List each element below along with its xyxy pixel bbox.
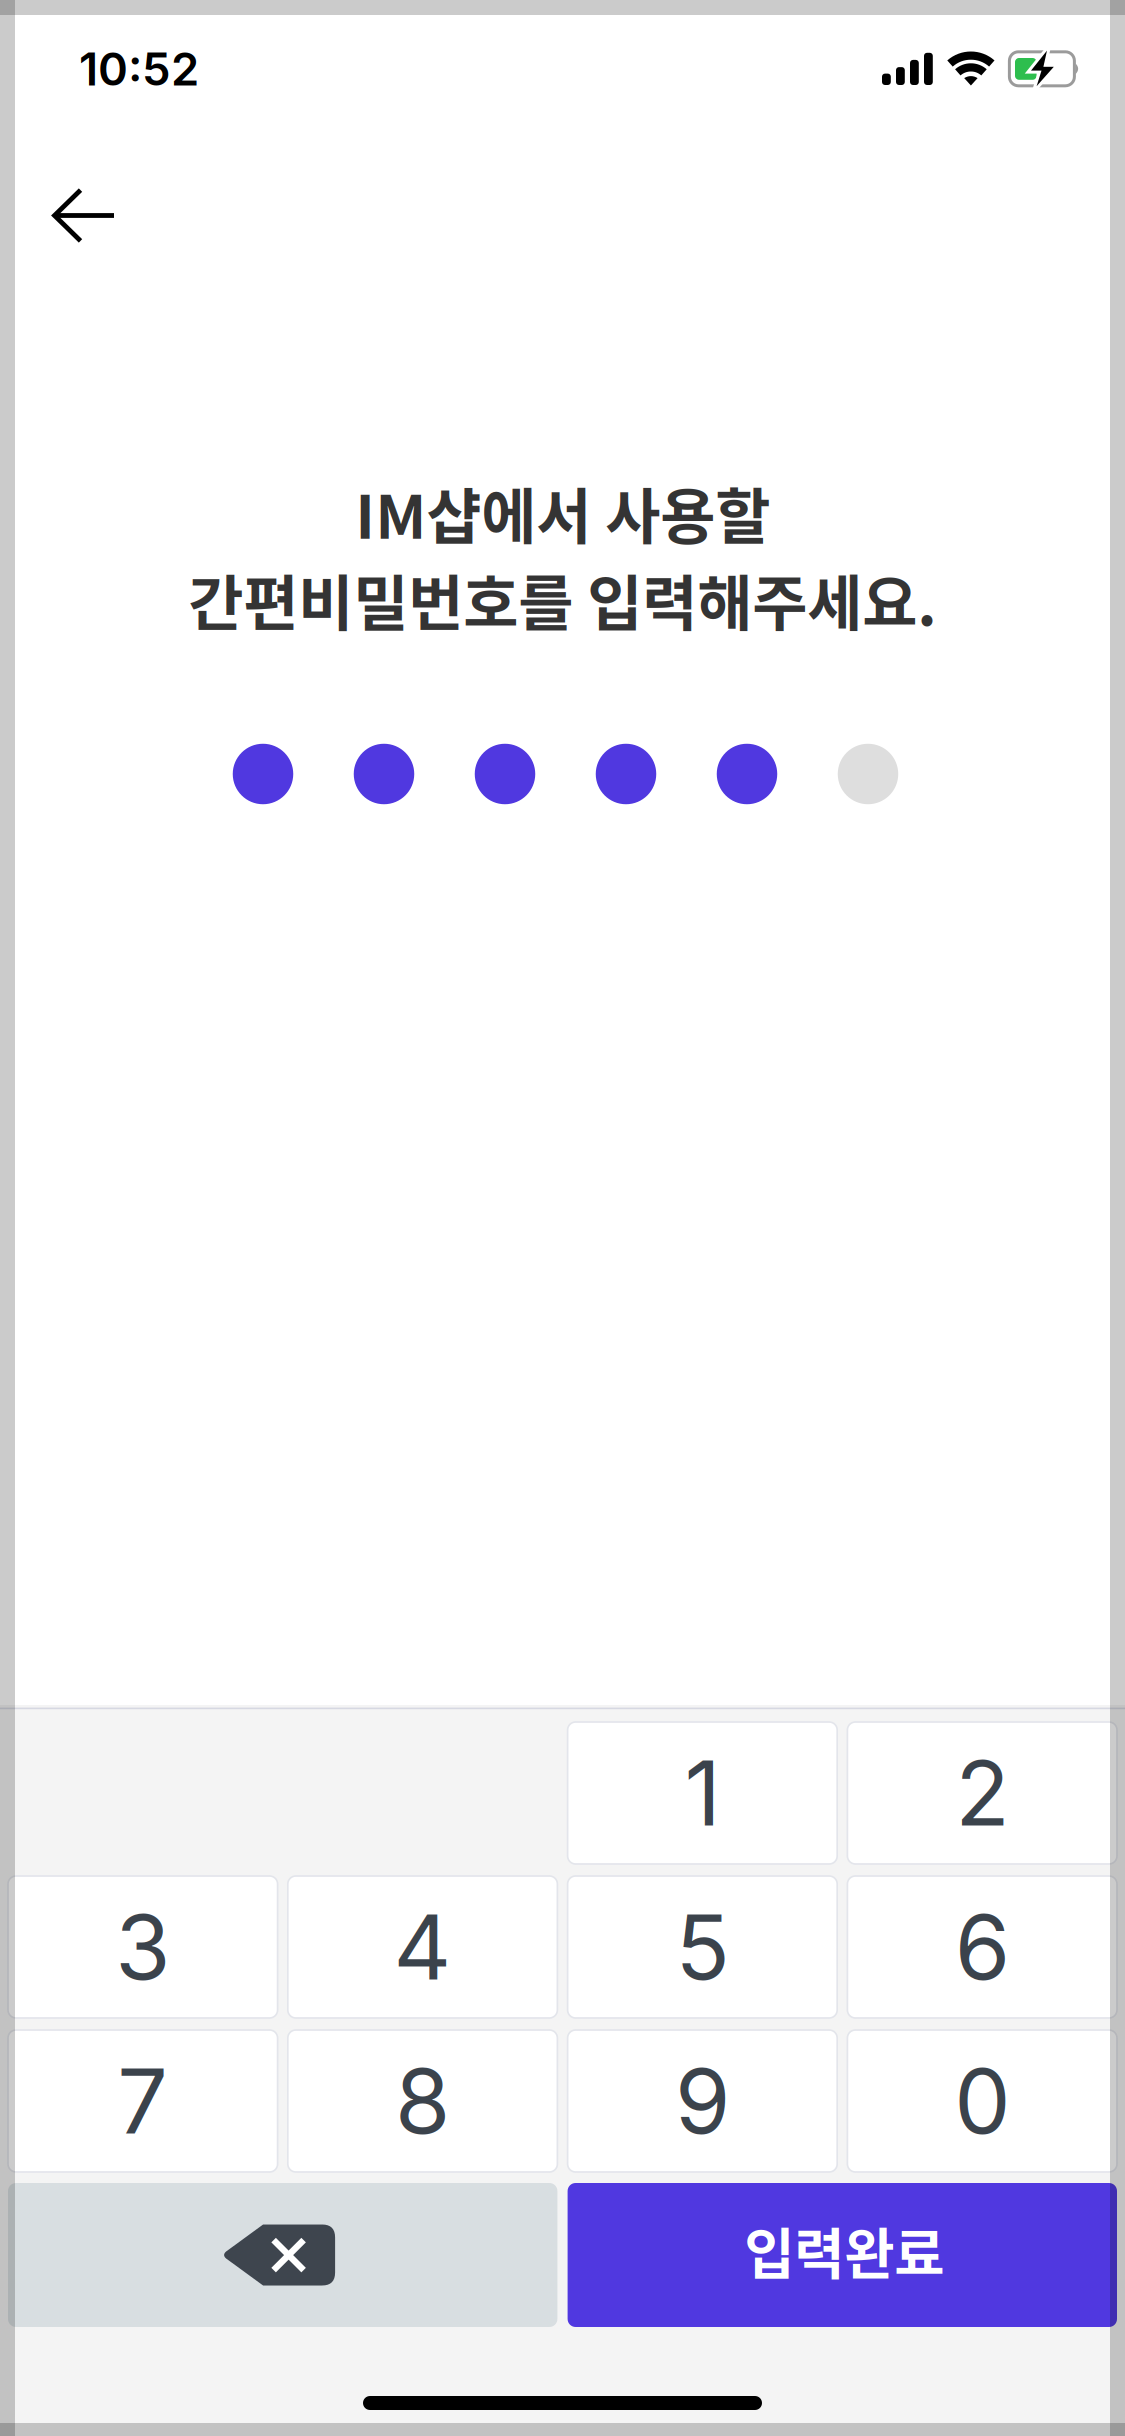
staticText: 2 xyxy=(955,1739,1009,1847)
button[interactable]: 6 xyxy=(847,1876,1117,2018)
staticText: 3 xyxy=(115,1893,170,2001)
staticText: 입력완료 xyxy=(744,2210,944,2290)
staticText: 6 xyxy=(955,1893,1010,2001)
button[interactable]: 3 xyxy=(8,1876,278,2018)
staticText: 10:52 xyxy=(79,42,199,96)
button[interactable]: 9 xyxy=(568,2030,837,2172)
button[interactable]: Back xyxy=(14,151,154,281)
staticText: 5 xyxy=(675,1893,729,2001)
staticText: 1 xyxy=(684,1739,720,1847)
staticText: 4 xyxy=(394,1893,452,2001)
staticText: 0 xyxy=(954,2047,1010,2155)
button[interactable]: 1 xyxy=(568,1722,837,1864)
staticText: 9 xyxy=(675,2047,730,2155)
button[interactable]: Delete xyxy=(8,2183,557,2327)
button[interactable]: 입력완료 xyxy=(568,2183,1117,2327)
staticText: 8 xyxy=(395,2047,450,2155)
button[interactable]: 0 xyxy=(847,2030,1117,2172)
button[interactable]: 7 xyxy=(8,2030,278,2172)
staticText: 7 xyxy=(117,2047,168,2155)
staticText: IM샵에서 사용할 간편비밀번호를 입력해주세요. xyxy=(188,469,937,643)
button[interactable]: 8 xyxy=(288,2030,557,2172)
button[interactable]: 2 xyxy=(847,1722,1117,1864)
button[interactable]: 4 xyxy=(288,1876,557,2018)
button[interactable]: 5 xyxy=(568,1876,837,2018)
